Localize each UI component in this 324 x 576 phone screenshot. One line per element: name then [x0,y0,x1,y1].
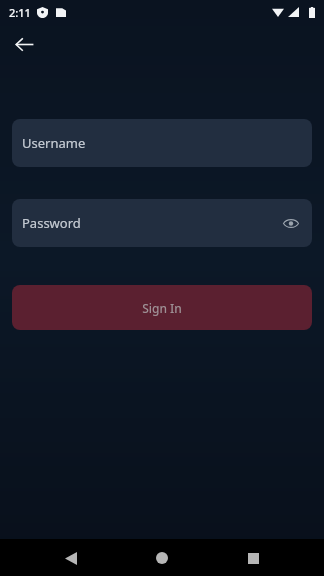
button[interactable]: Back [53,540,89,576]
staticText: Username [22,134,86,152]
staticText: Password [22,214,81,232]
button[interactable]: Recent apps [235,540,271,576]
button[interactable]: Sign In [12,285,312,330]
button[interactable]: Home [144,540,180,576]
button[interactable]: Show password [276,208,306,238]
button[interactable]: Username [12,119,312,167]
button[interactable]: Back [4,24,44,64]
staticText: 2:11 [9,5,31,20]
button[interactable]: Password [12,199,312,247]
staticText: Sign In [142,300,182,316]
